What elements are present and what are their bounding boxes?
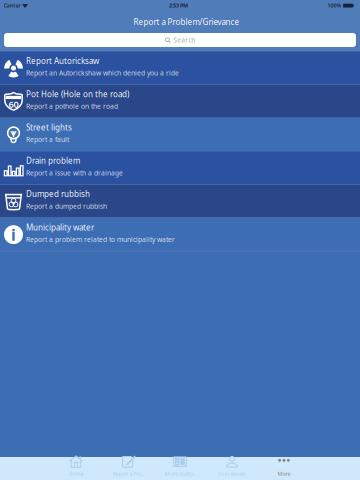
- staticText: 2:53 PM: [169, 2, 188, 9]
- staticText: i: [11, 224, 16, 245]
- staticText: Report a Problem/Grievance: [133, 17, 239, 27]
- button[interactable]: Dumped rubbish: [0, 185, 360, 218]
- button[interactable]: 60: [0, 85, 360, 118]
- staticText: Street lights: [26, 122, 72, 133]
- staticText: Report a issue with a drainage: [26, 168, 123, 177]
- button[interactable]: Report a Pro..: [102, 457, 154, 480]
- staticText: Report an Autorickshaw which denied you …: [26, 68, 179, 77]
- button[interactable]: Search: [4, 33, 356, 47]
- staticText: Municipality..: [164, 470, 195, 477]
- staticText: Report a dumped rubbish: [26, 202, 107, 211]
- staticText: Report a problem related to municipality…: [26, 235, 175, 244]
- staticText: Pot Hole (Hole on the road): [26, 89, 129, 99]
- staticText: User details: [217, 470, 246, 477]
- staticText: Search: [173, 36, 195, 44]
- button[interactable]: Municipality..: [154, 457, 206, 480]
- staticText: 100%: [327, 2, 341, 9]
- staticText: 60: [8, 98, 18, 110]
- button[interactable]: Street lights: [0, 118, 360, 151]
- staticText: Municipality water: [26, 222, 94, 233]
- staticText: Home: [68, 470, 83, 477]
- button[interactable]: Drain problem: [0, 151, 360, 185]
- staticText: More: [277, 470, 290, 477]
- staticText: Dumped rubbish: [26, 189, 90, 199]
- staticText: Report a pothole on the road: [26, 102, 118, 111]
- staticText: Report a fault: [26, 135, 69, 144]
- button[interactable]: Home: [50, 457, 102, 480]
- button[interactable]: i: [0, 218, 360, 251]
- button[interactable]: Report Autoricksaw: [0, 51, 360, 85]
- staticText: Report a Pro..: [112, 470, 143, 477]
- staticText: Carrier: [3, 2, 20, 9]
- button[interactable]: User details: [206, 457, 258, 480]
- staticText: Drain problem: [26, 155, 80, 166]
- staticText: Report Autoricksaw: [26, 55, 99, 66]
- button[interactable]: More: [258, 457, 310, 480]
